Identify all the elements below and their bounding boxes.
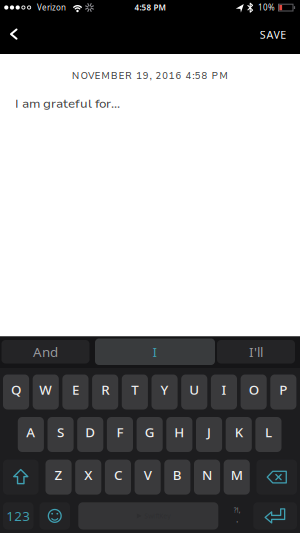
button[interactable]: And [1,340,89,363]
button[interactable]: E [62,374,88,409]
button[interactable]: P [270,374,296,409]
staticText: S [57,423,64,441]
staticText: And [33,343,58,361]
button[interactable]: I'll [217,340,295,363]
staticText: D [85,423,95,441]
staticText: Q [11,381,21,398]
staticText: B [173,466,182,484]
staticText: I [221,381,226,398]
staticText: 123 [6,507,30,525]
button[interactable]: A [18,417,44,452]
staticText: 10% [258,2,275,13]
staticText: Z [54,466,62,484]
staticText: O [249,381,259,398]
button[interactable]: I [95,338,215,365]
button[interactable]: C [105,460,131,495]
staticText: M [231,466,243,484]
button[interactable]: I [211,374,237,409]
staticText: T [131,381,138,398]
staticText: V [144,466,152,484]
button[interactable]: S [47,417,74,452]
button[interactable]: Punctuation [228,502,247,529]
staticText: K [235,423,243,441]
button[interactable]: J [196,417,222,452]
button[interactable]: Shift [3,460,38,495]
staticText: 4:58 PM [134,2,165,13]
staticText: U [189,381,199,398]
button[interactable]: W [33,374,59,409]
button[interactable]: B [164,460,190,495]
button[interactable]: R [92,374,118,409]
button[interactable]: Q [3,374,29,409]
button[interactable]: X [75,460,101,495]
staticText: E [72,381,79,398]
button[interactable]: O [241,374,267,409]
button[interactable]: L [255,417,281,452]
staticText: NOVEMBER 19, 2016 4:58 PM [72,70,228,82]
button[interactable]: N [194,460,220,495]
button[interactable]: Return [253,502,297,529]
staticText: W [39,381,52,398]
staticText: ?!, [234,505,241,514]
button[interactable]: F [107,417,133,452]
staticText: P [279,381,287,398]
button[interactable]: V [135,460,161,495]
staticText: A [26,423,35,441]
button[interactable]: T [122,374,148,409]
staticText: Y [161,381,169,398]
staticText: I am grateful for... [15,95,120,112]
button[interactable]: Back [0,19,34,49]
button[interactable]: G [137,417,163,452]
staticText: J [207,423,211,441]
staticText: L [265,423,272,441]
button[interactable]: M [224,460,250,495]
staticText: F [116,423,123,441]
button[interactable]: H [166,417,192,452]
staticText: SAVE [260,27,286,42]
staticText: Verizon [37,2,66,13]
button[interactable]: Numbers [3,502,33,529]
staticText: X [84,466,92,484]
button[interactable]: U [181,374,207,409]
button[interactable]: Z [45,460,72,495]
staticText: . [236,515,238,524]
staticText: I [152,343,157,361]
button[interactable]: K [226,417,252,452]
button[interactable]: SAVE [251,19,295,49]
staticText: H [174,423,184,441]
staticText: R [101,381,109,398]
staticText: N [202,466,212,484]
button[interactable]: Y [151,374,178,409]
button[interactable]: Delete [256,460,297,495]
button[interactable]: D [77,417,103,452]
staticText: C [114,466,122,484]
button[interactable]: Emoji [39,502,70,529]
staticText: G [145,423,155,441]
staticText: I'll [249,343,263,361]
